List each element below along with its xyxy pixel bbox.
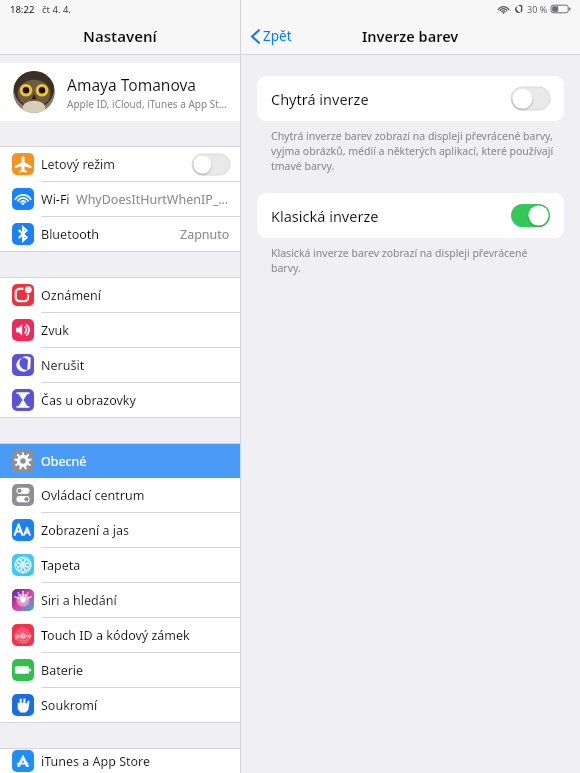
staticText: Bluetooth <box>41 226 100 243</box>
button[interactable]: Bluetooth <box>0 217 240 251</box>
button[interactable]: Zvuk <box>0 313 240 347</box>
staticText: Wi-Fi <box>41 191 70 208</box>
staticText: Tapeta <box>41 557 81 574</box>
staticText: Inverze barev <box>362 26 459 46</box>
staticText: Letový režim <box>41 156 116 173</box>
staticText: Obecné <box>41 453 87 470</box>
button[interactable]: Zpět <box>251 27 292 45</box>
staticText: Čas u obrazovky <box>41 392 136 409</box>
staticText: Siri a hledání <box>41 592 117 609</box>
staticText: Zpět <box>263 27 292 45</box>
staticText: Nerušit <box>41 357 85 374</box>
staticText: Nastavení <box>83 26 157 46</box>
button[interactable]: Čas u obrazovky <box>0 383 240 417</box>
button[interactable]: Ovládací centrum <box>0 478 240 512</box>
staticText: čt 4. 4. <box>42 3 71 16</box>
button[interactable]: Oznámení <box>0 278 240 312</box>
button[interactable]: Nerušit <box>0 348 240 382</box>
staticText: 30 % <box>527 3 548 15</box>
button[interactable]: Siri a hledání <box>0 583 240 617</box>
button[interactable]: Soukromí <box>0 688 240 722</box>
staticText: Touch ID a kódový zámek <box>41 627 190 644</box>
staticText: Chytrá inverze <box>271 89 369 109</box>
button[interactable]: Tapeta <box>0 548 240 582</box>
button[interactable]: Letový režim <box>0 147 240 181</box>
button[interactable]: Vypnuto <box>511 87 550 110</box>
staticText: iTunes a App Store <box>41 753 151 770</box>
staticText: Zobrazení a jas <box>41 522 129 539</box>
staticText: Klasická inverze barev zobrazí na disple… <box>271 246 558 275</box>
staticText: Zvuk <box>41 322 69 339</box>
staticText: Chytrá inverze barev zobrazí na displeji… <box>271 129 558 173</box>
button[interactable]: Touch ID a kódový zámek <box>0 618 240 652</box>
staticText: Soukromí <box>41 697 98 714</box>
staticText: Amaya Tomanova <box>67 74 197 95</box>
button[interactable]: Klasická inverze <box>257 193 564 238</box>
button[interactable]: Vypnuto <box>192 154 230 175</box>
staticText: 18:22 <box>10 3 35 16</box>
button[interactable]: Zobrazení a jas <box>0 513 240 547</box>
staticText: Zapnuto <box>180 226 230 243</box>
button[interactable]: iTunes a App Store <box>0 749 240 773</box>
button[interactable]: Amaya Tomanova <box>0 63 240 121</box>
staticText: Oznámení <box>41 287 102 304</box>
button[interactable]: Chytrá inverze <box>257 76 564 121</box>
staticText: Apple ID, iCloud, iTunes a App St… <box>67 97 227 111</box>
button[interactable]: Wi-Fi <box>0 182 240 216</box>
button[interactable]: Baterie <box>0 653 240 687</box>
button[interactable]: Obecné <box>0 444 240 478</box>
staticText: Ovládací centrum <box>41 487 145 504</box>
staticText: WhyDoesItHurtWhenIP_… <box>76 191 229 208</box>
button[interactable]: Zapnuto <box>511 204 550 227</box>
staticText: Klasická inverze <box>271 206 379 226</box>
staticText: Baterie <box>41 662 84 679</box>
